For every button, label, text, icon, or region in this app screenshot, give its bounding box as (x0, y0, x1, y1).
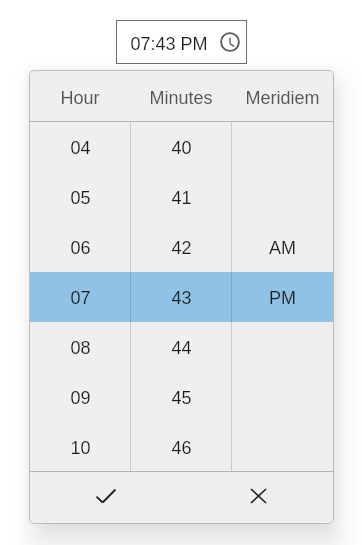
staticText: 05 (70, 188, 91, 208)
other: Pick time (220, 32, 240, 52)
staticText: 07 (70, 288, 91, 308)
button[interactable]: Confirm time (30, 472, 182, 524)
button[interactable]: 41 (131, 172, 231, 222)
button[interactable]: 07:43 PM (116, 20, 247, 64)
button[interactable]: Minutes (131, 70, 231, 121)
staticText: 40 (171, 138, 192, 158)
staticText: 46 (171, 438, 192, 458)
staticText: 41 (171, 188, 192, 208)
staticText: 43 (171, 288, 192, 308)
button[interactable]: 44 (131, 322, 231, 372)
button[interactable]: 40 (131, 122, 231, 172)
staticText: 08 (70, 338, 91, 358)
button[interactable]: Cancel (182, 472, 334, 524)
button[interactable]: AM (232, 222, 333, 272)
button[interactable]: PM (232, 272, 333, 322)
staticText: Minutes (149, 88, 213, 108)
staticText: PM (269, 288, 296, 308)
button[interactable]: 45 (131, 372, 231, 422)
staticText: 06 (70, 238, 91, 258)
staticText: Meridiem (245, 88, 320, 108)
staticText: 42 (171, 238, 192, 258)
staticText: 09 (70, 388, 91, 408)
button[interactable]: 07 (30, 272, 130, 322)
button[interactable]: 42 (131, 222, 231, 272)
button[interactable]: Hour (30, 70, 130, 121)
button[interactable]: 06 (30, 222, 130, 272)
button[interactable]: 05 (30, 172, 130, 222)
staticText: AM (269, 238, 296, 258)
button[interactable]: 09 (30, 372, 130, 422)
staticText: 44 (171, 338, 192, 358)
button[interactable]: 43 (131, 272, 231, 322)
staticText: 04 (70, 138, 91, 158)
button[interactable]: 10 (30, 422, 130, 471)
button[interactable]: 08 (30, 322, 130, 372)
button[interactable]: 04 (30, 122, 130, 172)
staticText: 45 (171, 388, 192, 408)
button[interactable]: Meridiem (232, 70, 333, 121)
button[interactable]: 46 (131, 422, 231, 471)
staticText: Hour (60, 88, 100, 108)
staticText: 07:43 PM (130, 34, 208, 54)
staticText: 10 (70, 438, 91, 458)
